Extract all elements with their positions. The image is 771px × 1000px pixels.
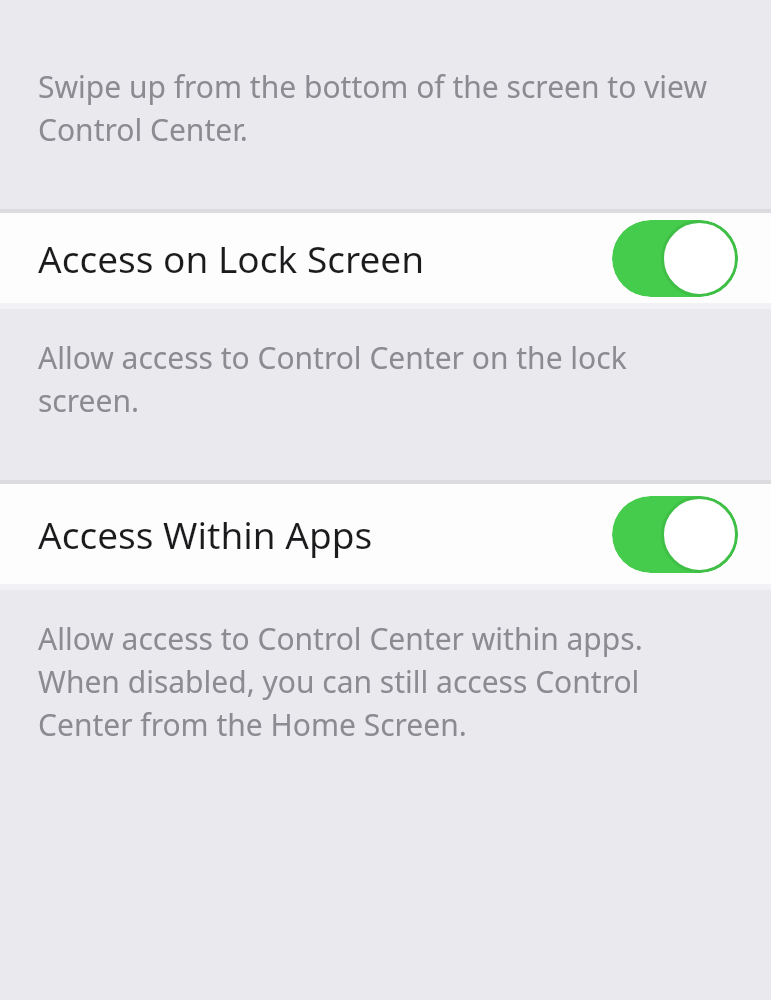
button[interactable]: Access Within Apps: [0, 484, 771, 584]
other: Access on Lock Screen: [612, 220, 738, 297]
staticText: Access on Lock Screen: [38, 233, 425, 283]
button[interactable]: Access Within Apps: [612, 496, 738, 573]
other: Access Within Apps: [612, 496, 738, 573]
button[interactable]: Access on Lock Screen: [0, 213, 771, 303]
staticText: Allow access to Control Center on the lo…: [38, 337, 715, 421]
staticText: Swipe up from the bottom of the screen t…: [38, 66, 715, 150]
staticText: Access Within Apps: [38, 509, 373, 559]
button[interactable]: Access on Lock Screen: [612, 220, 738, 297]
staticText: Allow access to Control Center within ap…: [38, 618, 715, 745]
